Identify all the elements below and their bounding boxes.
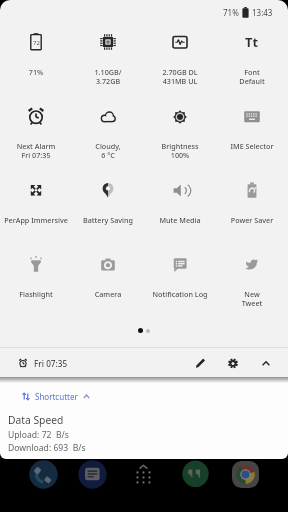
staticText: Font Default — [216, 67, 288, 86]
button[interactable] — [260, 357, 272, 369]
staticText: 1.10GB/ 3.72GB — [72, 67, 144, 86]
button[interactable]: Battery Saving — [72, 172, 144, 246]
staticText: 71% — [223, 7, 239, 18]
staticText: New Tweet — [216, 289, 288, 308]
staticText: 13:43 — [252, 7, 273, 18]
staticText: Download: 693 B/s — [8, 442, 86, 454]
staticText: PerApp Immersive — [0, 215, 72, 225]
staticText: Upload: 72 B/s — [8, 429, 69, 441]
button[interactable]: Flashlight — [0, 246, 72, 320]
button[interactable] — [132, 461, 156, 491]
button[interactable]: Mute Media — [144, 172, 216, 246]
staticText: Brightness 100% — [144, 141, 216, 160]
button[interactable] — [181, 460, 210, 489]
staticText: 2.70GB DL 431MB UL — [144, 67, 216, 86]
staticText: 71% — [0, 67, 72, 77]
button[interactable]: Camera — [72, 246, 144, 320]
button[interactable]: Shortcutter — [22, 391, 90, 402]
button[interactable]: New Tweet — [216, 246, 288, 320]
staticText: Flashlight — [0, 289, 72, 299]
button[interactable] — [227, 357, 239, 369]
staticText: Fri 07:35 — [34, 358, 68, 369]
staticText: Shortcutter — [35, 391, 78, 402]
button[interactable] — [78, 460, 107, 489]
button[interactable] — [231, 460, 260, 489]
staticText: 72 — [33, 39, 40, 47]
button[interactable]: 1.10GB/ 3.72GB — [72, 24, 144, 98]
button[interactable]: Power Saver — [216, 172, 288, 246]
button[interactable]: 2.70GB DL 431MB UL — [144, 24, 216, 98]
staticText: Next Alarm Fri 07:35 — [0, 141, 72, 160]
staticText: Cloudy, 6 °C — [72, 141, 144, 160]
staticText: Power Saver — [216, 215, 288, 225]
button[interactable]: Tt — [216, 24, 288, 98]
button[interactable]: IME Selector — [216, 98, 288, 172]
staticText: Notification Log — [144, 289, 216, 299]
button[interactable] — [29, 460, 58, 489]
staticText: Data Speed — [8, 413, 64, 427]
button[interactable]: Next Alarm Fri 07:35 — [0, 98, 72, 172]
button[interactable]: 72 — [0, 24, 72, 98]
button[interactable] — [194, 357, 206, 369]
staticText: Camera — [72, 289, 144, 299]
button[interactable]: PerApp Immersive — [0, 172, 72, 246]
button[interactable]: Brightness 100% — [144, 98, 216, 172]
button[interactable]: Cloudy, 6 °C — [72, 98, 144, 172]
button[interactable]: Fri 07:35 — [17, 357, 68, 369]
staticText: Mute Media — [144, 215, 216, 225]
staticText: IME Selector — [216, 141, 288, 151]
button[interactable]: Notification Log — [144, 246, 216, 320]
staticText: Battery Saving — [72, 215, 144, 225]
staticText: Tt — [245, 33, 259, 51]
